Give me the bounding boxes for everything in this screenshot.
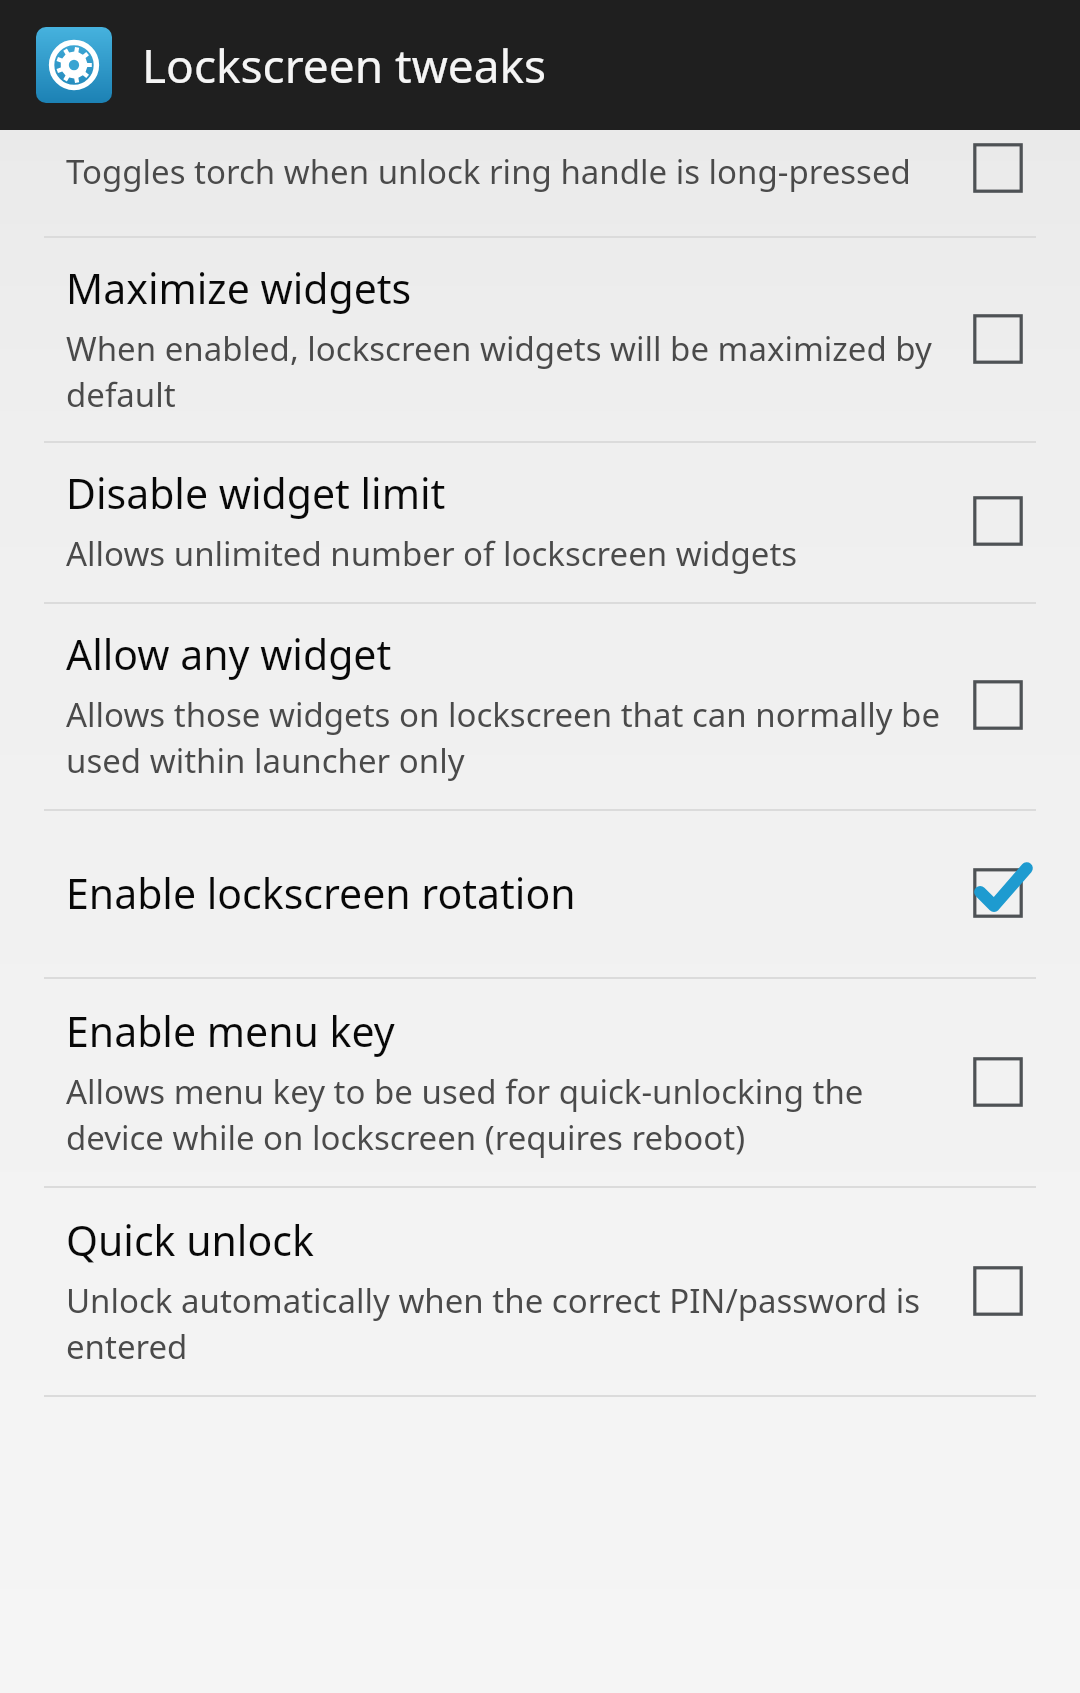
staticText: Allows menu key to be used for quick-unl… [66, 1069, 946, 1160]
button[interactable]: Enable lockscreen rotation [0, 811, 1080, 977]
button[interactable]: Disable widget limit [0, 443, 1080, 602]
staticText: Lockscreen tweaks [142, 34, 547, 97]
staticText: Unlock automatically when the correct PI… [66, 1278, 946, 1369]
button[interactable]: Allow any widget [0, 604, 1080, 809]
button[interactable]: Maximize widgets [0, 238, 1080, 441]
button[interactable]: Toggles torch when unlock ring handle is… [0, 130, 1080, 236]
staticText: Enable menu key [66, 1003, 395, 1059]
staticText: Allows unlimited number of lockscreen wi… [66, 531, 798, 576]
staticText: Quick unlock [66, 1212, 314, 1268]
button[interactable]: Quick unlock [0, 1188, 1080, 1395]
staticText: Allow any widget [66, 626, 392, 682]
button[interactable]: Enable menu key [0, 979, 1080, 1186]
other: App icon [36, 27, 112, 103]
button[interactable]: App icon [0, 0, 1080, 130]
staticText: When enabled, lockscreen widgets will be… [66, 326, 946, 417]
staticText: Maximize widgets [66, 260, 412, 316]
staticText: Toggles torch when unlock ring handle is… [66, 149, 911, 194]
staticText: Disable widget limit [66, 465, 446, 521]
staticText: Enable lockscreen rotation [66, 865, 576, 921]
staticText: Allows those widgets on lockscreen that … [66, 692, 946, 783]
